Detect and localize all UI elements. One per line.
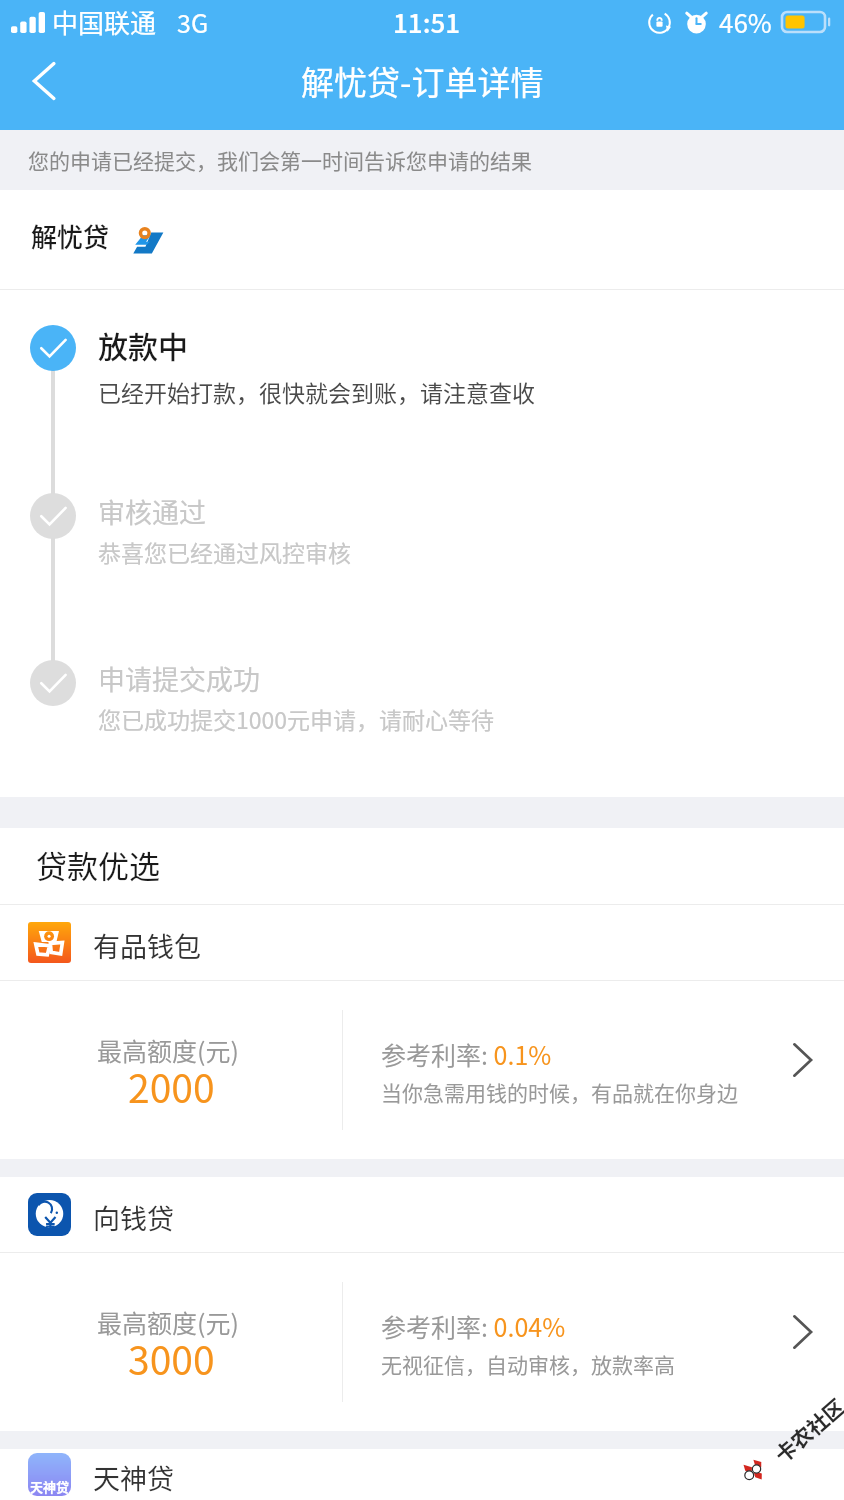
staticText: 天神贷 — [93, 1458, 174, 1497]
button[interactable]: Back — [4, 41, 84, 121]
staticText: 最高额度(元) — [97, 1032, 239, 1068]
staticText: 3000 — [128, 1330, 215, 1386]
staticText: 您已成功提交1000元申请，请耐心等待 — [98, 702, 495, 735]
staticText: 审核通过 — [98, 492, 206, 531]
staticText: 天神贷 — [30, 1477, 70, 1496]
staticText: 46% — [719, 3, 772, 41]
staticText: 卡农社区 — [767, 1391, 844, 1469]
button[interactable]: 最高额度(元) — [0, 1253, 844, 1431]
staticText: 解忧贷-订单详情 — [301, 57, 544, 105]
staticText: 3G — [177, 4, 209, 40]
button[interactable]: 最高额度(元) — [0, 981, 844, 1159]
button[interactable]: 有品钱包 — [0, 905, 844, 980]
staticText: 参考利率: 0.04% — [381, 1308, 566, 1344]
staticText: 11:51 — [393, 3, 461, 41]
button[interactable]: 向钱贷 — [0, 1177, 844, 1252]
staticText: 有品钱包 — [93, 926, 201, 965]
staticText: 当你急需用钱的时候，有品就在你身边 — [381, 1077, 738, 1107]
staticText: 贷款优选 — [36, 842, 160, 887]
staticText: 放款中 — [98, 323, 188, 366]
staticText: 最高额度(元) — [97, 1304, 239, 1340]
staticText: 已经开始打款，很快就会到账，请注意查收 — [98, 375, 535, 408]
staticText: 解忧贷 — [31, 217, 110, 255]
staticText: 无视征信，自动审核，放款率高 — [381, 1349, 675, 1379]
button[interactable]: 天神贷 — [0, 1449, 844, 1500]
staticText: 2000 — [128, 1058, 215, 1114]
staticText: 参考利率: 0.1% — [381, 1036, 552, 1072]
staticText: 中国联通 — [52, 3, 157, 41]
staticText: 您的申请已经提交，我们会第一时间告诉您申请的结果 — [28, 145, 532, 175]
staticText: 恭喜您已经通过风控审核 — [98, 535, 351, 568]
staticText: 申请提交成功 — [98, 659, 260, 698]
staticText: 向钱贷 — [93, 1198, 174, 1237]
